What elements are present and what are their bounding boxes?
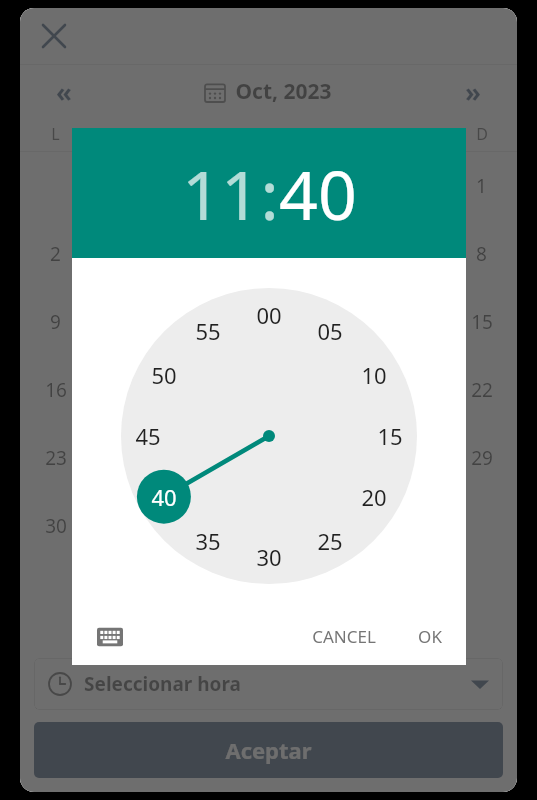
button[interactable]: 21 [375, 356, 446, 424]
button[interactable] [446, 492, 517, 560]
button[interactable]: 4 [162, 220, 233, 288]
button[interactable]: 00 [246, 292, 292, 338]
staticText: 1 [476, 173, 487, 199]
button[interactable]: 27 [304, 424, 375, 492]
button[interactable] [233, 152, 304, 220]
button[interactable]: 7 [375, 220, 446, 288]
staticText: 05 [317, 316, 343, 346]
button[interactable]: Previous month [44, 71, 84, 111]
button[interactable]: 05 [307, 308, 353, 354]
button[interactable]: 30 [20, 492, 91, 560]
button[interactable]: Switch to text input [86, 613, 134, 661]
staticText: Aceptar [225, 735, 312, 765]
button[interactable]: 25 [162, 424, 233, 492]
staticText: 12 [258, 309, 280, 335]
staticText: 24 [116, 445, 138, 471]
button[interactable]: Close [32, 14, 76, 58]
button[interactable]: 1 [446, 152, 517, 220]
button[interactable]: 18 [162, 356, 233, 424]
button[interactable]: 8 [446, 220, 517, 288]
button[interactable]: 26 [233, 424, 304, 492]
button[interactable]: 11 [162, 288, 233, 356]
staticText: 5 [263, 241, 274, 267]
button[interactable] [304, 152, 375, 220]
button[interactable]: 6 [304, 220, 375, 288]
staticText: 25 [317, 526, 343, 556]
button[interactable] [304, 492, 375, 560]
staticText: 40 [151, 482, 177, 512]
button[interactable]: Seleccionar hora [34, 658, 503, 710]
button[interactable]: 15 [446, 288, 517, 356]
button[interactable]: 28 [375, 424, 446, 492]
staticText: 16 [45, 377, 67, 403]
staticText: S [406, 123, 415, 145]
staticText: 10 [361, 360, 387, 390]
button[interactable]: Next month [453, 71, 493, 111]
button[interactable]: 45 [125, 413, 171, 459]
staticText: 00 [256, 300, 282, 330]
staticText: 29 [471, 445, 493, 471]
button[interactable]: 16 [20, 356, 91, 424]
button[interactable]: 40 [279, 147, 357, 240]
button[interactable]: 15 [367, 413, 413, 459]
staticText: L [51, 123, 60, 145]
button[interactable] [162, 492, 233, 560]
button[interactable] [20, 152, 91, 220]
staticText: 7 [405, 241, 416, 267]
button[interactable]: 10 [91, 288, 162, 356]
staticText: 22 [471, 377, 493, 403]
button[interactable]: 23 [20, 424, 91, 492]
button[interactable]: 2 [20, 220, 91, 288]
staticText: CANCEL [312, 625, 376, 648]
staticText: Oct, 2023 [235, 77, 332, 106]
button[interactable]: 3 [91, 220, 162, 288]
button[interactable]: 14 [375, 288, 446, 356]
staticText: V [335, 123, 345, 145]
button[interactable]: 50 [141, 352, 187, 398]
staticText: 3 [121, 241, 132, 267]
staticText: 50 [151, 360, 177, 390]
button[interactable] [233, 492, 304, 560]
staticText: 30 [256, 542, 282, 572]
staticText: 23 [45, 445, 67, 471]
button[interactable]: 30 [246, 534, 292, 580]
button[interactable]: 35 [185, 518, 231, 564]
button[interactable]: 12 [233, 288, 304, 356]
button[interactable]: 9 [20, 288, 91, 356]
staticText: 4 [192, 241, 203, 267]
button[interactable]: 22 [446, 356, 517, 424]
button[interactable]: 10 [351, 352, 397, 398]
button[interactable] [375, 492, 446, 560]
button[interactable]: 29 [446, 424, 517, 492]
staticText: « [56, 74, 72, 109]
staticText: 21 [400, 377, 422, 403]
button[interactable]: 5 [233, 220, 304, 288]
staticText: : [260, 147, 279, 240]
button[interactable]: OK [404, 615, 456, 658]
button[interactable]: 11 [182, 147, 260, 240]
button[interactable]: 13 [304, 288, 375, 356]
button[interactable]: Aceptar [34, 722, 503, 778]
staticText: X [193, 123, 203, 145]
staticText: 9 [50, 309, 61, 335]
button[interactable]: CANCEL [298, 615, 390, 658]
button[interactable]: 17 [91, 356, 162, 424]
button[interactable]: 31 [91, 492, 162, 560]
button[interactable]: 25 [307, 518, 353, 564]
staticText: 13 [329, 309, 351, 335]
button[interactable]: 20 [351, 474, 397, 520]
staticText: 17 [116, 377, 138, 403]
button[interactable] [162, 152, 233, 220]
button[interactable]: 55 [185, 308, 231, 354]
button[interactable]: 20 [304, 356, 375, 424]
button[interactable]: 40 [141, 474, 187, 520]
button[interactable]: 24 [91, 424, 162, 492]
staticText: Seleccionar hora [84, 671, 241, 697]
